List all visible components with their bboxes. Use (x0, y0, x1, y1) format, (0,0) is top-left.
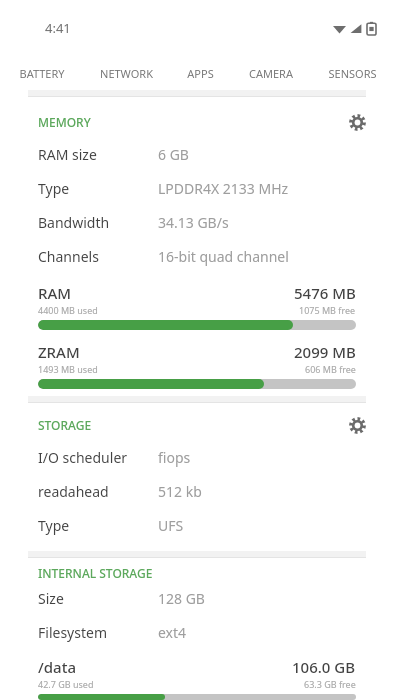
button[interactable]: Settings for MEMORY (342, 107, 372, 137)
staticText: Filesystem (38, 623, 158, 642)
staticText: BATTERY (19, 66, 65, 81)
staticText: INTERNAL STORAGE (38, 565, 372, 581)
button[interactable]: RAM (0, 283, 394, 330)
staticText: 606 MB free (305, 363, 356, 375)
staticText: ZRAM (38, 342, 294, 362)
staticText: fiops (158, 448, 191, 467)
staticText: 34.13 GB/s (158, 213, 229, 232)
button[interactable]: ZRAM (0, 342, 394, 389)
button[interactable]: SENSORS (310, 56, 394, 90)
button[interactable]: Filesystem (0, 623, 394, 642)
staticText: RAM size (38, 145, 158, 164)
button[interactable]: I/O scheduler (0, 448, 394, 467)
staticText: 2099 MB (294, 342, 356, 362)
staticText: 4400 MB used (38, 304, 299, 316)
staticText: 1075 MB free (299, 304, 356, 316)
staticText: 63.3 GB free (304, 678, 356, 690)
staticText: Channels (38, 247, 158, 266)
staticText: UFS (158, 516, 184, 535)
button[interactable]: /data (0, 657, 394, 700)
button[interactable]: Size (0, 589, 394, 608)
staticText: SENSORS (328, 66, 377, 81)
staticText: 106.0 GB (292, 657, 356, 677)
button[interactable]: Type (0, 516, 394, 535)
staticText: I/O scheduler (38, 448, 158, 467)
staticText: LPDDR4X 2133 MHz (158, 179, 289, 198)
staticText: Type (38, 179, 158, 198)
button[interactable]: Channels (0, 247, 394, 266)
staticText: NETWORK (100, 66, 153, 81)
button[interactable]: Type (0, 179, 394, 198)
staticText: 128 GB (158, 589, 205, 608)
button[interactable]: BATTERY (0, 56, 83, 90)
button[interactable]: NETWORK (83, 56, 169, 90)
staticText: CAMERA (249, 66, 293, 81)
staticText: APPS (187, 66, 214, 81)
staticText: Bandwidth (38, 213, 158, 232)
button[interactable]: readahead (0, 482, 394, 501)
button[interactable]: Settings for STORAGE (342, 410, 372, 440)
staticText: 4:41 (45, 19, 71, 37)
staticText: MEMORY (38, 114, 342, 130)
staticText: 16-bit quad channel (158, 247, 289, 266)
staticText: Size (38, 589, 158, 608)
staticText: 5476 MB (294, 283, 356, 303)
button[interactable]: Bandwidth (0, 213, 394, 232)
staticText: /data (38, 657, 292, 677)
staticText: readahead (38, 482, 158, 501)
button[interactable]: CAMERA (231, 56, 310, 90)
staticText: 42.7 GB used (38, 678, 304, 690)
staticText: RAM (38, 283, 294, 303)
staticText: STORAGE (38, 417, 342, 433)
staticText: 6 GB (158, 145, 189, 164)
staticText: 512 kb (158, 482, 202, 501)
staticText: 1493 MB used (38, 363, 305, 375)
button[interactable]: RAM size (0, 145, 394, 164)
staticText: Type (38, 516, 158, 535)
staticText: ext4 (158, 623, 187, 642)
button[interactable]: APPS (169, 56, 231, 90)
